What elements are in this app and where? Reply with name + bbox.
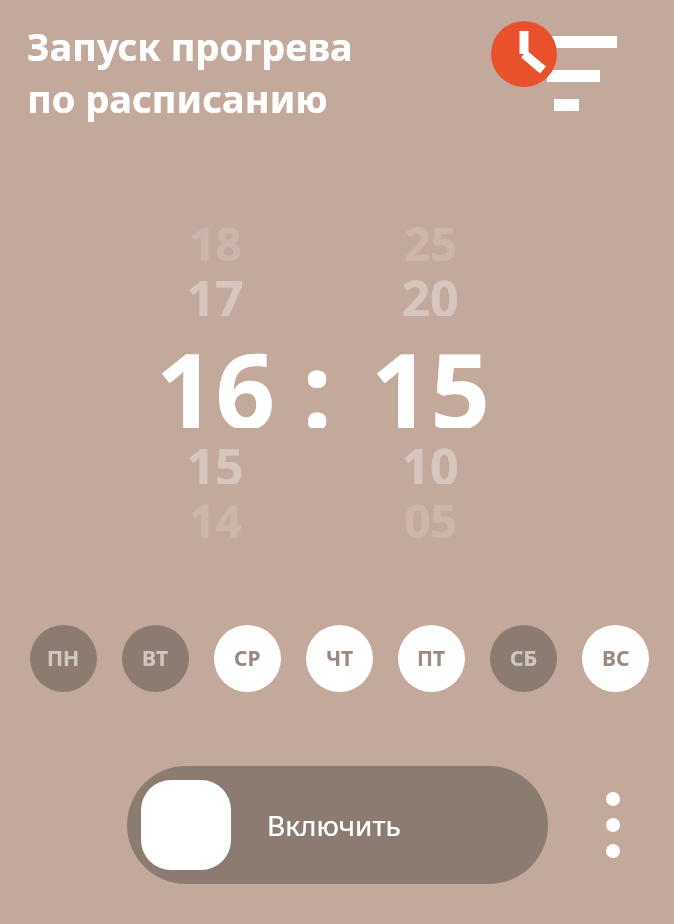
staticText: ВТ: [142, 644, 169, 673]
button[interactable]: ВТ: [122, 625, 189, 692]
staticText: ПТ: [417, 644, 446, 673]
staticText: 15: [186, 432, 244, 484]
staticText: Включить: [267, 806, 401, 844]
button[interactable]: Включить: [127, 766, 548, 884]
staticText: СБ: [510, 644, 538, 673]
staticText: 05: [404, 489, 457, 541]
staticText: 14: [189, 489, 242, 541]
button[interactable]: ВС: [582, 625, 649, 692]
staticText: 16: [156, 318, 275, 428]
staticText: 17: [186, 264, 244, 316]
button[interactable]: ПН: [30, 625, 97, 692]
staticText: по расписанию: [27, 72, 328, 124]
staticText: 10: [401, 432, 459, 484]
staticText: 15: [371, 318, 490, 428]
staticText: ВС: [602, 644, 630, 673]
staticText: Запуск прогрева: [27, 20, 353, 72]
button[interactable]: СР: [214, 625, 281, 692]
button[interactable]: ЧТ: [306, 625, 373, 692]
button[interactable]: СБ: [490, 625, 557, 692]
button[interactable]: Schedule: [484, 14, 630, 118]
staticText: :: [302, 318, 332, 428]
staticText: 18: [189, 212, 242, 264]
staticText: 25: [404, 212, 457, 264]
staticText: ЧТ: [326, 644, 354, 673]
button[interactable]: More options: [585, 770, 641, 880]
staticText: 20: [401, 264, 459, 316]
staticText: СР: [234, 644, 261, 673]
button[interactable]: ПТ: [398, 625, 465, 692]
staticText: ПН: [47, 644, 80, 673]
